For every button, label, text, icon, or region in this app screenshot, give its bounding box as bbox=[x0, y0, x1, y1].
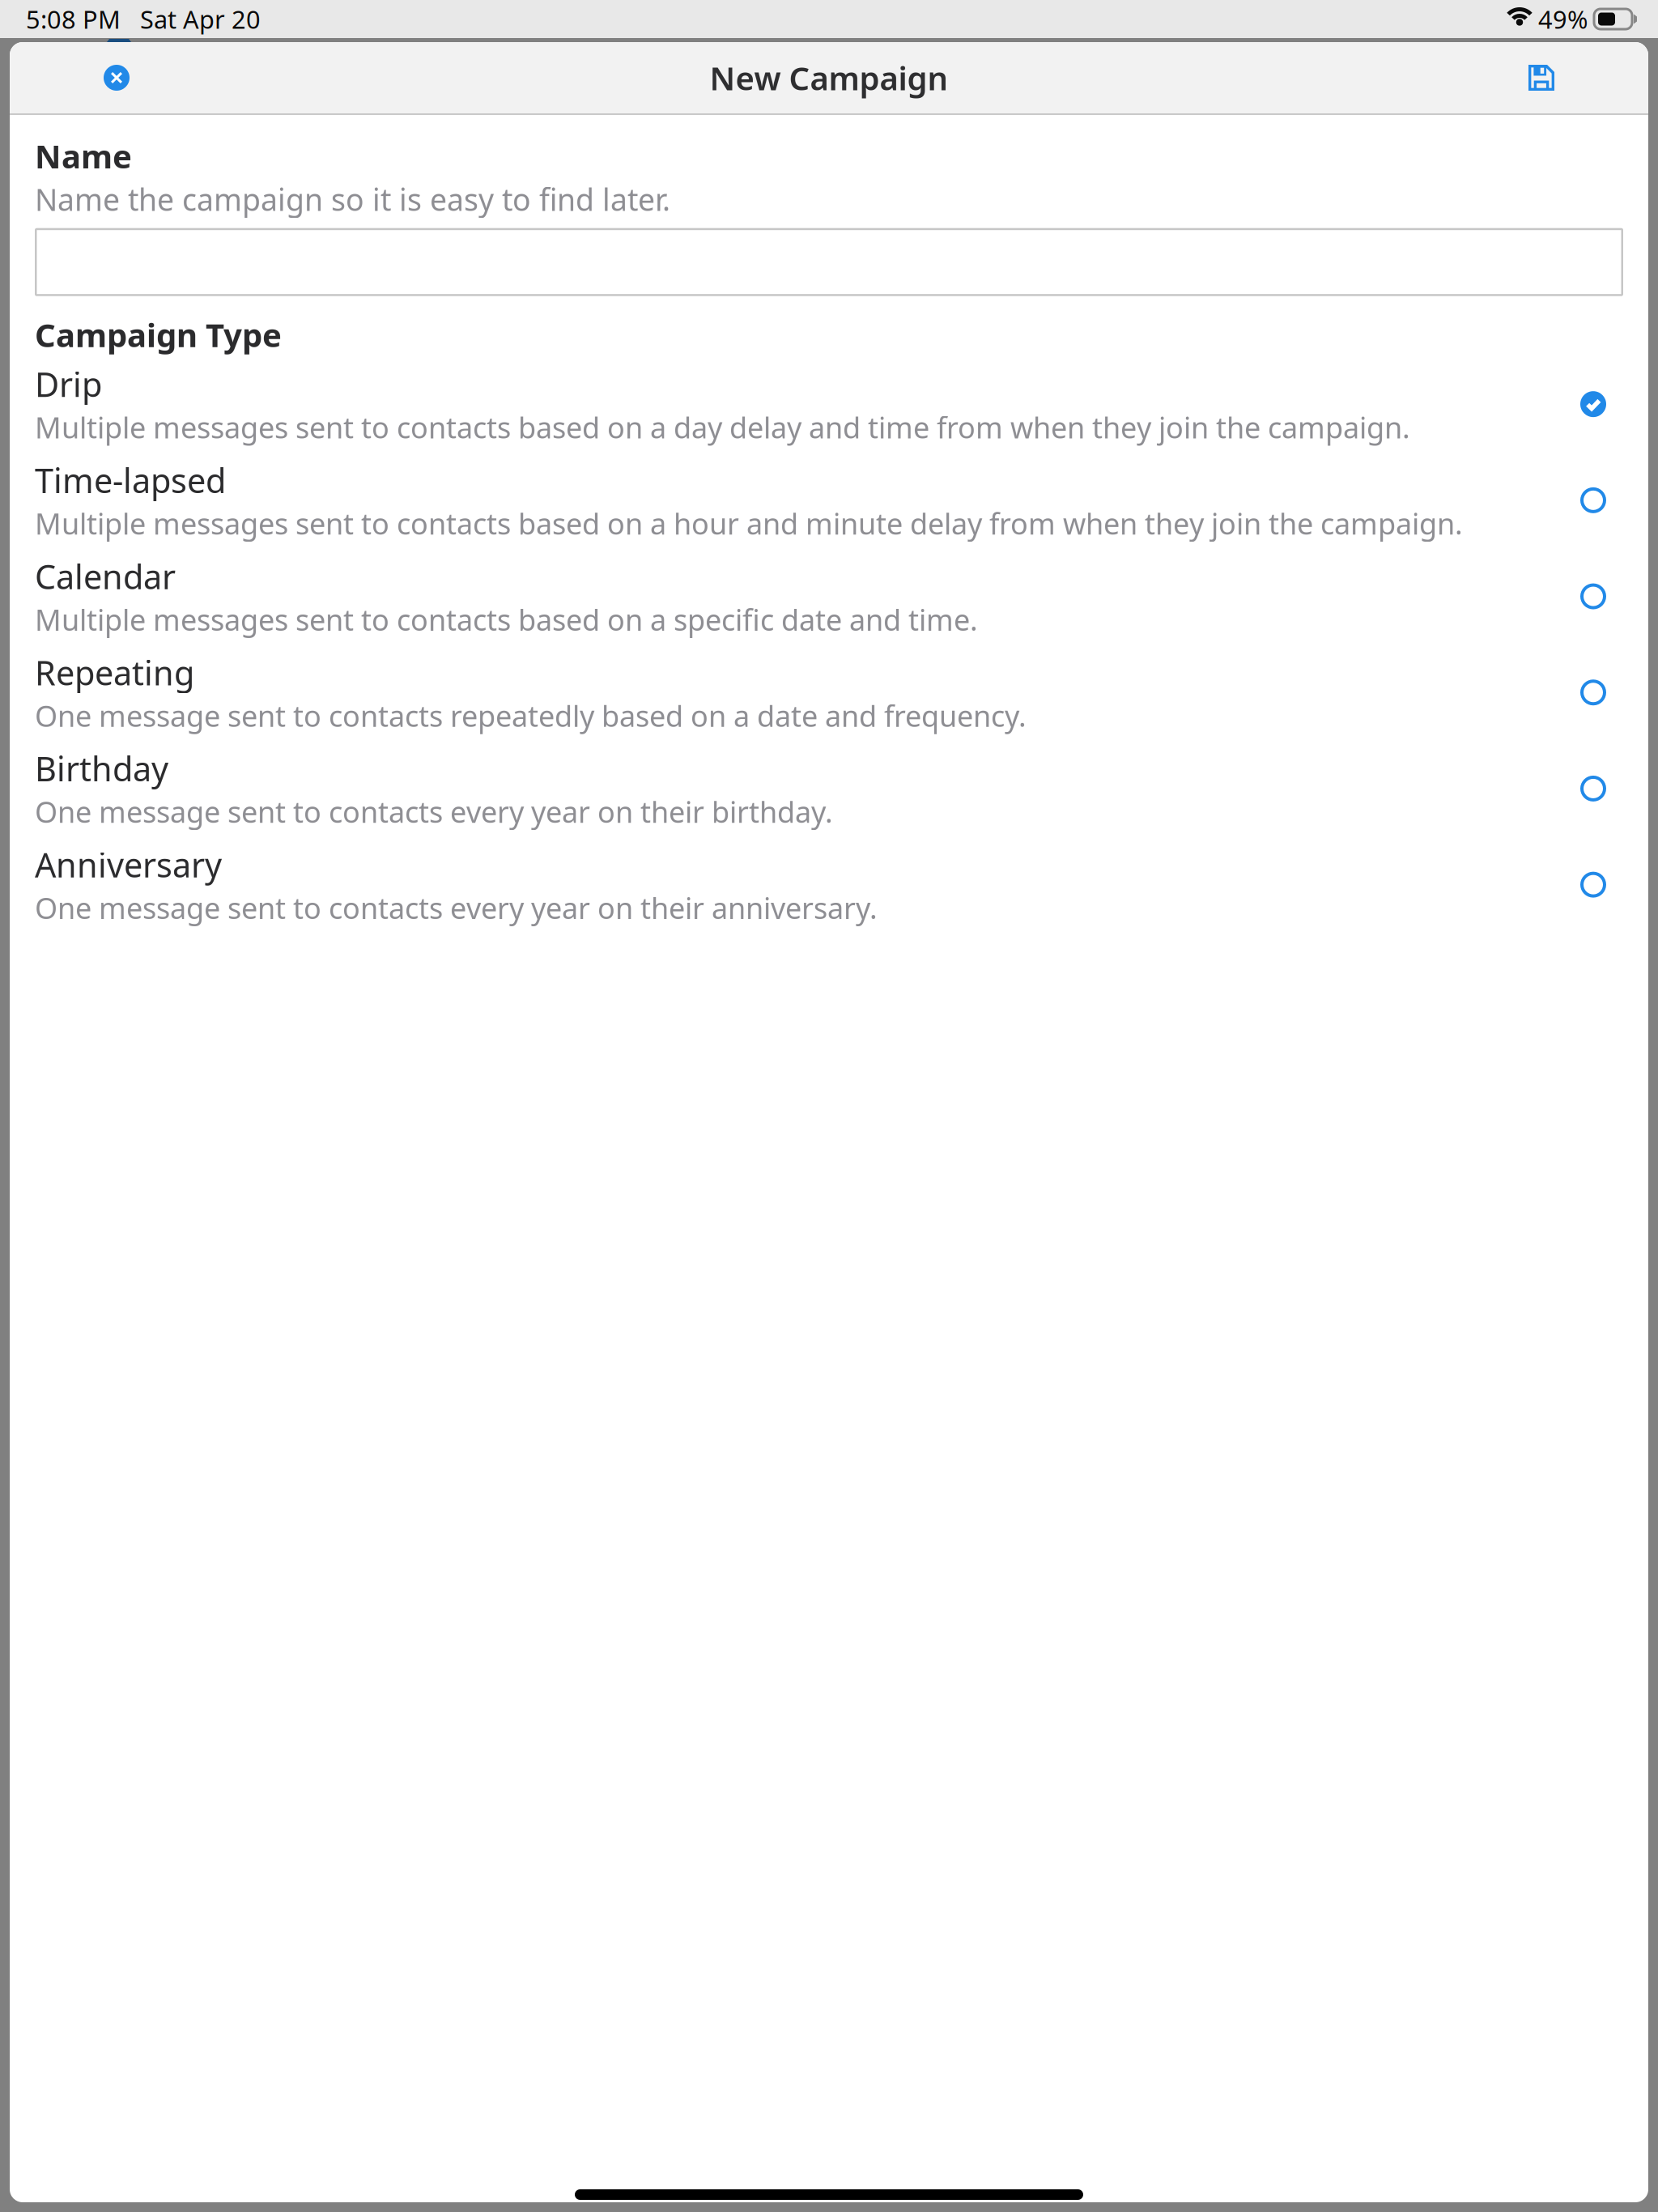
button[interactable]: Drip bbox=[10, 356, 1648, 452]
staticText: Calendar bbox=[35, 554, 176, 598]
staticText: One message sent to contacts every year … bbox=[35, 888, 878, 927]
button[interactable]: Anniversary bbox=[10, 837, 1648, 933]
staticText: Name bbox=[35, 134, 132, 177]
button[interactable]: Calendar bbox=[10, 548, 1648, 644]
staticText: Anniversary bbox=[35, 842, 222, 887]
staticText: Time-lapsed bbox=[35, 458, 226, 502]
staticText: Multiple messages sent to contacts based… bbox=[35, 408, 1410, 447]
staticText: 49% bbox=[1532, 3, 1594, 35]
staticText: Multiple messages sent to contacts based… bbox=[35, 504, 1463, 543]
button[interactable]: Birthday bbox=[10, 741, 1648, 837]
button[interactable]: Campaign name bbox=[35, 228, 1623, 296]
staticText: One message sent to contacts repeatedly … bbox=[35, 696, 1027, 735]
button[interactable]: Repeating bbox=[10, 644, 1648, 741]
staticText: Repeating bbox=[35, 650, 194, 695]
staticText: Campaign Type bbox=[35, 313, 282, 356]
button[interactable]: Time-lapsed bbox=[10, 452, 1648, 548]
staticText: Birthday bbox=[35, 746, 168, 791]
staticText: Drip bbox=[35, 362, 102, 406]
staticText: Name the campaign so it is easy to find … bbox=[35, 179, 670, 219]
button[interactable]: Save bbox=[1509, 47, 1574, 108]
staticText: New Campaign bbox=[710, 56, 948, 99]
staticText: 5:08 PM bbox=[26, 3, 121, 35]
button[interactable]: Close bbox=[84, 47, 149, 108]
staticText: Sat Apr 20 bbox=[121, 3, 261, 35]
staticText: One message sent to contacts every year … bbox=[35, 792, 833, 831]
staticText: Multiple messages sent to contacts based… bbox=[35, 600, 978, 639]
